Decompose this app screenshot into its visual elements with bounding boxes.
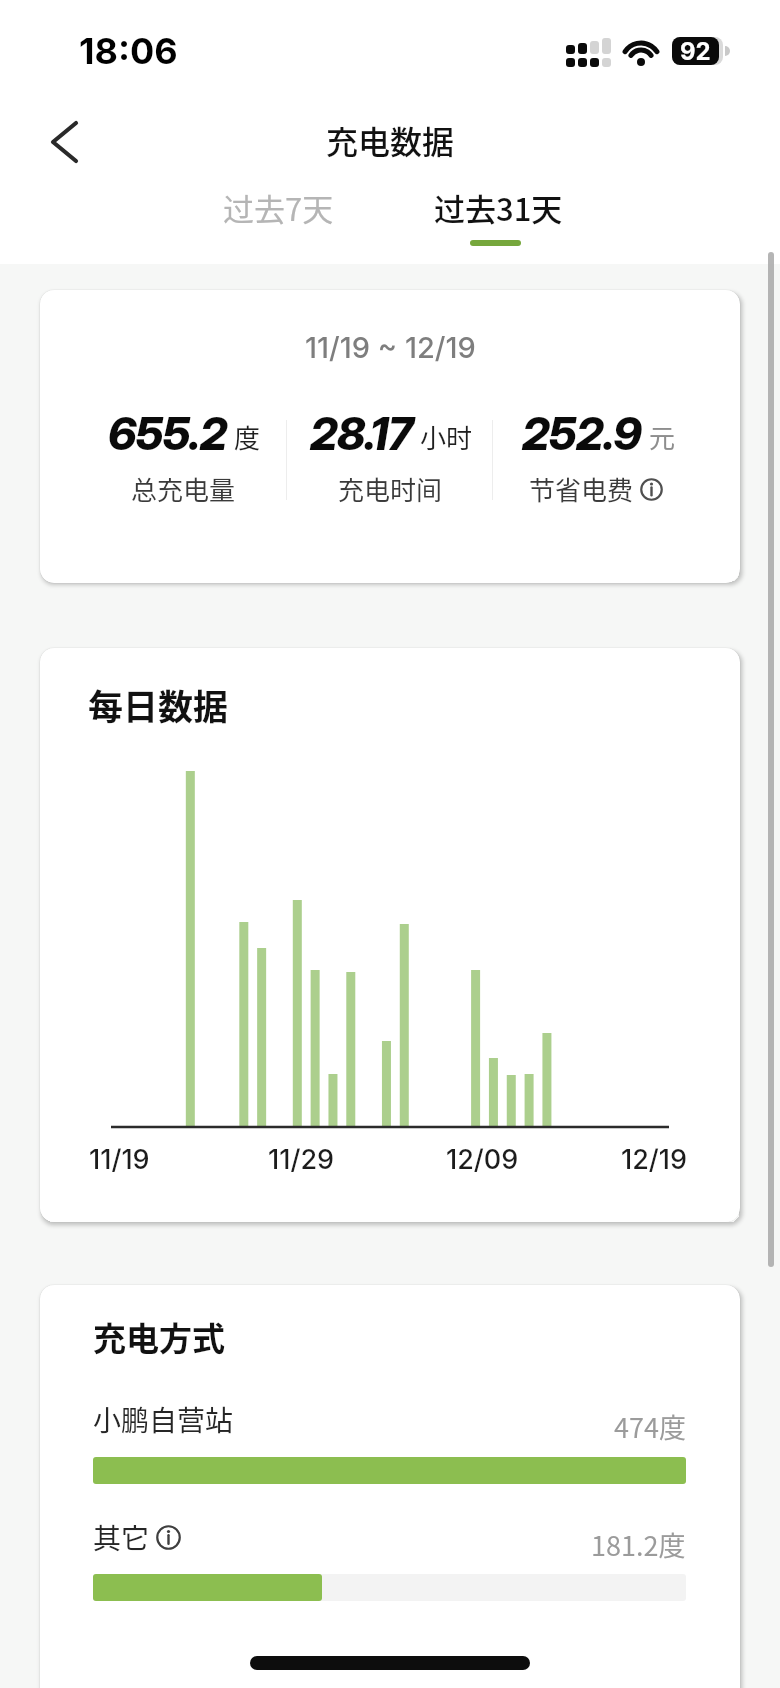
button[interactable]: 过去31天 (388, 176, 608, 238)
staticText: 小时 (420, 418, 473, 456)
staticText: 252.9 (522, 406, 642, 460)
staticText: 474度 (614, 1407, 686, 1446)
button[interactable] (93, 1574, 322, 1601)
staticText: 充电时间 (338, 470, 443, 508)
staticText: 元 (649, 418, 676, 456)
staticText: 每日数据 (88, 679, 229, 730)
staticText: 过去7天 (223, 185, 334, 230)
staticText: 度 (234, 418, 261, 456)
staticText: 11/19 (89, 1143, 150, 1176)
button[interactable]: 过去7天 (168, 176, 388, 238)
staticText: 11/29 (268, 1143, 335, 1176)
staticText: 充电数据 (326, 117, 455, 163)
staticText: 181.2度 (591, 1525, 686, 1564)
staticText: 小鹏自营站 (93, 1399, 234, 1440)
staticText: 92 (680, 37, 711, 65)
staticText: 28.17 (310, 406, 413, 460)
staticText: 655.2 (108, 406, 227, 460)
staticText: 充电方式 (93, 1313, 225, 1361)
staticText: 11/19 ~ 12/19 (305, 330, 476, 365)
staticText: 其它 (93, 1517, 150, 1558)
staticText: 过去31天 (434, 185, 563, 230)
staticText: 12/09 (446, 1143, 519, 1176)
staticText: 节省电费 (529, 470, 634, 508)
button[interactable] (40, 118, 88, 166)
staticText: 12/19 (621, 1143, 688, 1176)
staticText: 18:06 (79, 29, 178, 73)
staticText: 总充电量 (131, 470, 236, 508)
